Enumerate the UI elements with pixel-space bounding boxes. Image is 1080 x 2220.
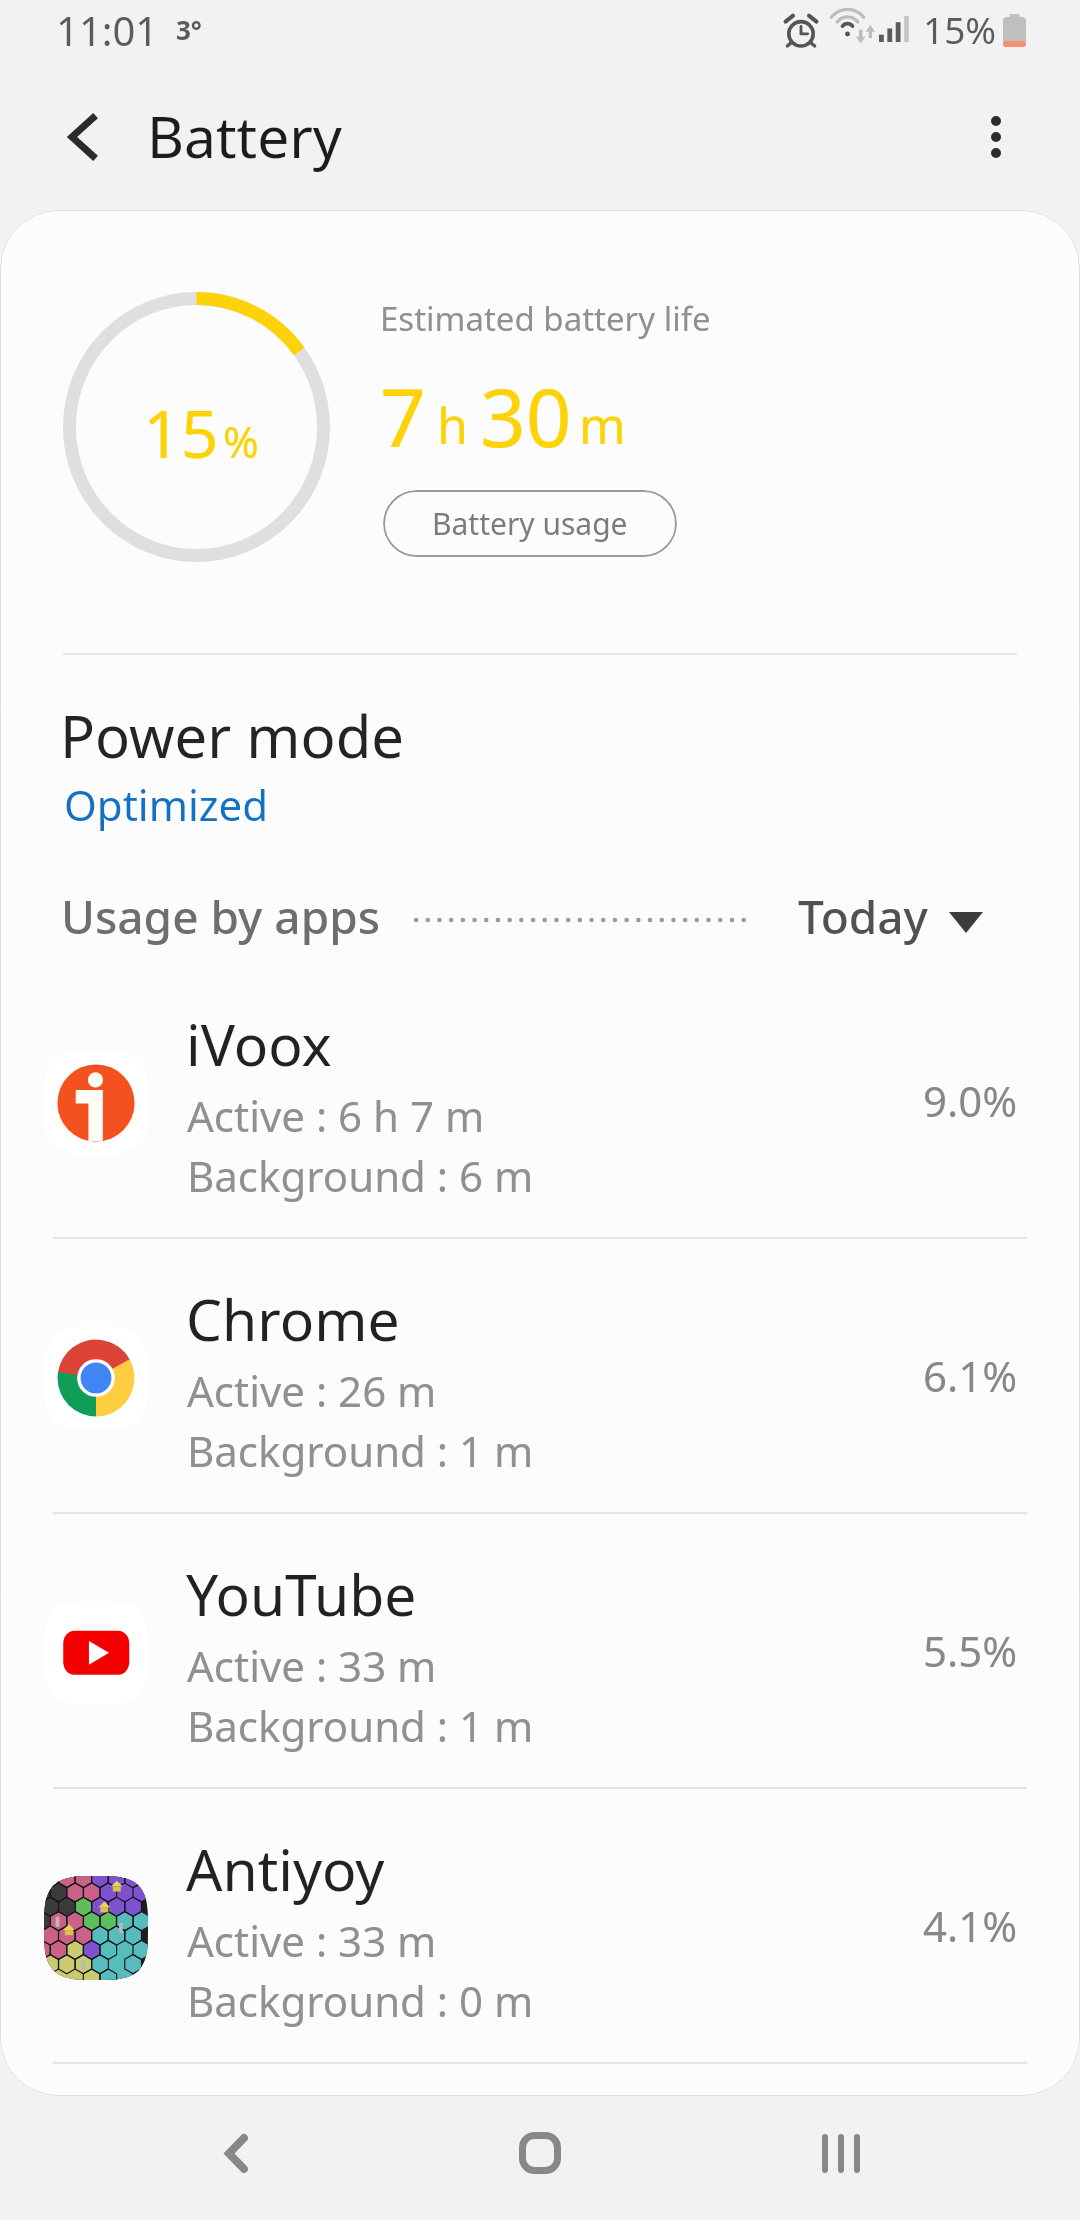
staticText: Active : 33 m bbox=[187, 1912, 437, 1969]
staticText: h bbox=[437, 391, 468, 459]
staticText: Background : 6 m bbox=[187, 1147, 534, 1204]
staticText: Background : 0 m bbox=[187, 1972, 534, 2029]
staticText: Active : 6 h 7 m bbox=[187, 1087, 485, 1144]
button[interactable]: Today bbox=[790, 890, 995, 952]
staticText: 5.5% bbox=[923, 1622, 1018, 1679]
staticText: 3° bbox=[176, 12, 202, 47]
button[interactable]: Back bbox=[180, 2091, 293, 2215]
staticText: 6.1% bbox=[923, 1347, 1018, 1404]
staticText: Background : 1 m bbox=[187, 1697, 534, 1754]
staticText: Battery usage bbox=[432, 503, 628, 544]
staticText: 9.0% bbox=[923, 1072, 1018, 1129]
staticText: Chrome bbox=[186, 1280, 400, 1358]
staticText: Battery bbox=[147, 97, 342, 175]
staticText: Antiyoy bbox=[186, 1830, 385, 1908]
staticText: Usage by apps bbox=[61, 885, 381, 948]
staticText: 4.1% bbox=[923, 1897, 1018, 1954]
button[interactable]: Recent apps bbox=[784, 2091, 897, 2215]
button[interactable]: Chrome bbox=[0, 1237, 1080, 1512]
button[interactable]: Home bbox=[483, 2091, 596, 2215]
staticText: Today bbox=[798, 885, 928, 947]
staticText: 15 bbox=[143, 387, 219, 477]
button[interactable]: Antiyoy bbox=[0, 1787, 1080, 2062]
staticText: Active : 26 m bbox=[187, 1362, 437, 1419]
staticText: Active : 33 m bbox=[187, 1637, 437, 1694]
staticText: m bbox=[579, 391, 626, 459]
staticText: Estimated battery life bbox=[380, 296, 711, 341]
button[interactable]: Navigate up bbox=[32, 87, 132, 187]
staticText: Power mode bbox=[60, 696, 405, 775]
button[interactable]: Power mode bbox=[0, 680, 1080, 850]
button[interactable]: More options bbox=[946, 87, 1046, 187]
staticText: 15% bbox=[923, 4, 997, 54]
button[interactable]: iVoox bbox=[0, 962, 1080, 1237]
staticText: Optimized bbox=[64, 776, 268, 833]
staticText: 11:01 bbox=[56, 3, 159, 57]
staticText: YouTube bbox=[186, 1555, 417, 1633]
button[interactable]: YouTube bbox=[0, 1512, 1080, 1787]
staticText: 30 bbox=[480, 361, 572, 470]
staticText: Background : 1 m bbox=[187, 1422, 534, 1479]
staticText: iVoox bbox=[186, 1005, 332, 1083]
button[interactable]: Battery usage bbox=[383, 490, 677, 557]
staticText: 7 bbox=[380, 361, 426, 470]
staticText: % bbox=[223, 412, 259, 471]
